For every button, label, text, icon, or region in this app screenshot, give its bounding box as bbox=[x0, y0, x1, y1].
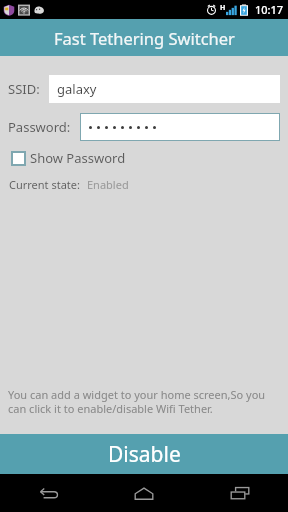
staticText: Password: bbox=[8, 118, 71, 136]
button[interactable] bbox=[80, 113, 280, 141]
button[interactable]: Home bbox=[96, 474, 192, 512]
button[interactable]: Disable bbox=[0, 434, 288, 474]
button[interactable]: galaxy bbox=[49, 75, 280, 103]
staticText: galaxy bbox=[57, 80, 97, 98]
staticText: Show Password bbox=[30, 149, 126, 167]
staticText: Fast Tethering Switcher bbox=[54, 27, 235, 49]
staticText: Enabled bbox=[87, 177, 129, 192]
staticText: H bbox=[220, 3, 226, 13]
button[interactable]: Show Password bbox=[11, 149, 126, 167]
staticText: Current state: bbox=[9, 177, 80, 192]
staticText: Disable bbox=[108, 440, 181, 469]
staticText: SSID: bbox=[8, 80, 40, 98]
staticText: You can add a widget to your home screen… bbox=[8, 387, 280, 416]
button[interactable]: Back bbox=[0, 474, 96, 512]
staticText: 10:17 bbox=[255, 2, 284, 17]
button[interactable]: Recent apps bbox=[192, 474, 288, 512]
